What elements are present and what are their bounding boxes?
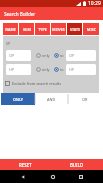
- button[interactable]: RESET: [0, 159, 51, 170]
- staticText: RESET: [19, 162, 32, 168]
- button[interactable]: AND: [35, 93, 68, 105]
- button[interactable]: M.M: [19, 23, 34, 35]
- staticText: TYPE: [38, 27, 47, 32]
- staticText: MOVES: [52, 27, 65, 32]
- button[interactable]: MOVES: [51, 23, 66, 35]
- staticText: ONLY: [13, 97, 24, 102]
- button[interactable]: Back: [14, 170, 31, 183]
- staticText: HP: [9, 67, 15, 72]
- staticText: NAME: [5, 27, 16, 32]
- staticText: to: [60, 53, 64, 58]
- button[interactable]: only: [36, 64, 50, 75]
- staticText: Search Builder: [4, 11, 36, 17]
- button[interactable]: ONLY: [1, 93, 35, 105]
- button[interactable]: HP: [6, 64, 31, 75]
- button[interactable]: OR: [68, 93, 101, 105]
- staticText: Exclude from search results: [12, 81, 61, 86]
- staticText: 10:29: [88, 0, 101, 7]
- staticText: only: [42, 67, 50, 72]
- staticText: SP: [6, 41, 11, 46]
- button[interactable]: to: [54, 50, 64, 61]
- button[interactable]: OP: [6, 50, 31, 61]
- button[interactable]: Home: [44, 170, 61, 183]
- staticText: OR: [82, 97, 88, 102]
- button[interactable]: MISC: [83, 23, 99, 35]
- button[interactable]: TYPE: [35, 23, 50, 35]
- staticText: HP: [69, 67, 75, 72]
- staticText: BUILD: [70, 162, 84, 168]
- staticText: MISC: [87, 27, 96, 32]
- button[interactable]: only: [36, 50, 50, 61]
- staticText: only: [42, 53, 50, 58]
- staticText: AND: [47, 97, 56, 102]
- staticText: STATS: [70, 27, 80, 32]
- staticText: to: [60, 67, 64, 72]
- button[interactable]: NAME: [3, 23, 18, 35]
- button[interactable]: Exclude from search results: [5, 79, 61, 88]
- button[interactable]: OP: [66, 50, 96, 61]
- button[interactable]: to: [54, 64, 64, 75]
- staticText: OP: [9, 53, 15, 58]
- staticText: OP: [69, 53, 75, 58]
- button[interactable]: HP: [66, 64, 96, 75]
- button[interactable]: BUILD: [51, 159, 103, 170]
- staticText: M.M: [23, 27, 31, 32]
- button[interactable]: STATS: [67, 23, 82, 35]
- button[interactable]: Recents: [72, 170, 89, 183]
